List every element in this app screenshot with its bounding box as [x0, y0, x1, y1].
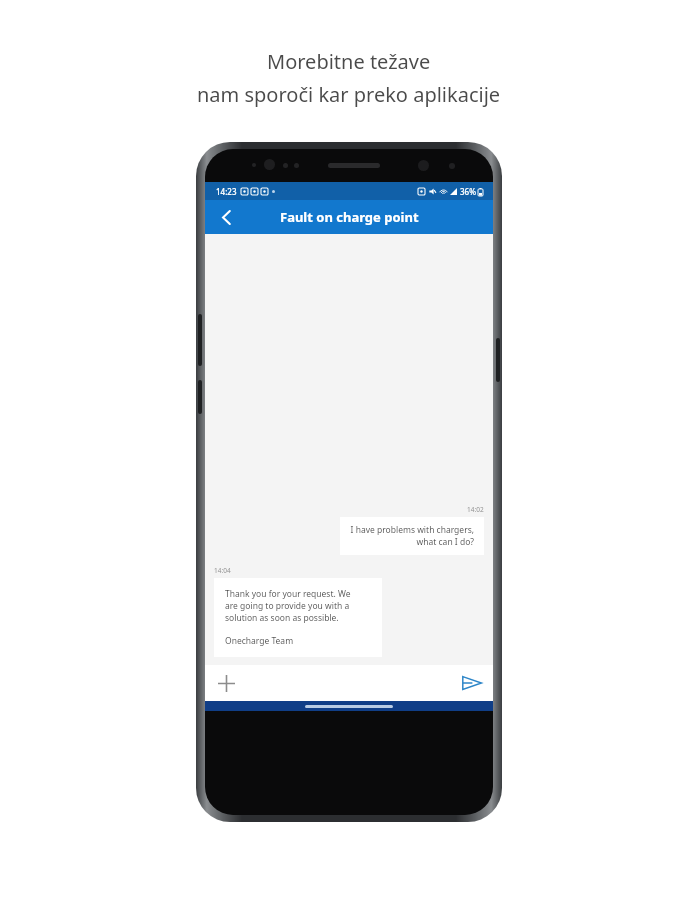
staticText: nam sporoči kar preko aplikacije	[197, 81, 501, 108]
staticText: 36%	[460, 186, 476, 197]
button[interactable]: Back	[211, 202, 241, 232]
button[interactable]: I have problems with chargers, what can …	[340, 517, 484, 555]
staticText: I have problems with chargers, what can …	[350, 524, 474, 548]
button[interactable]: Thank you for your request. We are going…	[214, 578, 382, 657]
staticText: 14:23	[216, 186, 237, 197]
staticText: Fault on charge point	[280, 208, 419, 226]
staticText: Morebitne težave	[267, 48, 431, 75]
button[interactable]: Add attachment	[211, 668, 241, 698]
staticText: Thank you for your request. We are going…	[225, 588, 351, 624]
staticText: 14:04	[214, 566, 231, 575]
staticText: Onecharge Team	[225, 635, 294, 647]
staticText: 14:02	[467, 505, 484, 514]
button[interactable]: Send	[457, 668, 487, 698]
